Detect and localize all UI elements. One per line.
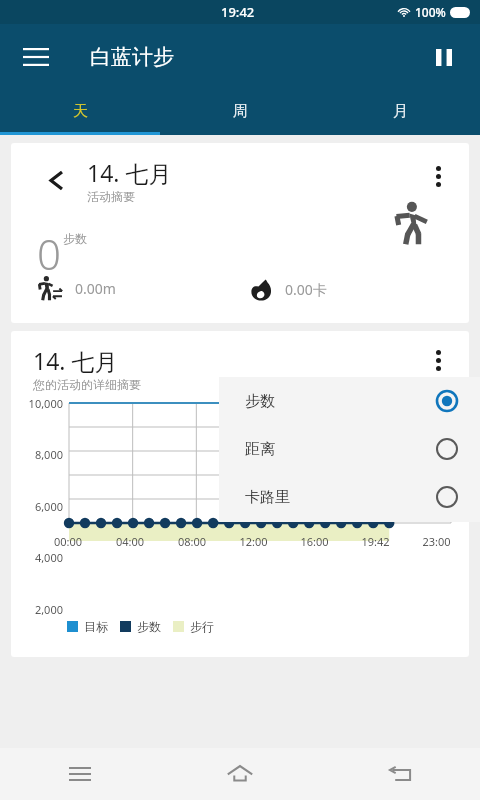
staticText: 100% xyxy=(415,4,446,20)
button[interactable]: 月 xyxy=(320,90,480,132)
staticText: 16:00 xyxy=(284,534,345,549)
staticText: 活动摘要 xyxy=(87,189,135,204)
button[interactable]: Previous day xyxy=(11,143,469,323)
button[interactable]: Menu xyxy=(14,35,58,79)
staticText: 0.00卡 xyxy=(285,280,327,299)
staticText: 周 xyxy=(233,102,248,121)
staticText: 14. 七月 xyxy=(33,345,118,376)
staticText: 19:42 xyxy=(345,534,406,549)
staticText: 卡路里 xyxy=(245,488,290,507)
button[interactable]: More options xyxy=(421,159,455,193)
staticText: 0.00m xyxy=(75,279,116,298)
staticText: 步数 xyxy=(245,392,275,411)
staticText: 08:00 xyxy=(161,534,223,549)
button[interactable]: 步数 xyxy=(219,377,480,425)
button[interactable]: Recent apps xyxy=(0,748,160,800)
button[interactable]: 14. 七月 xyxy=(11,331,469,657)
button[interactable]: 卡路里 xyxy=(219,473,480,521)
button[interactable]: Previous day xyxy=(45,169,67,191)
button[interactable]: Chart options xyxy=(421,343,455,377)
staticText: 10,000 xyxy=(11,396,63,411)
staticText: 14. 七月 xyxy=(87,157,172,188)
button[interactable]: 天 xyxy=(0,90,160,132)
button[interactable]: Back xyxy=(320,748,480,800)
staticText: 6,000 xyxy=(11,499,63,514)
staticText: 0 xyxy=(37,225,61,282)
staticText: 步行 xyxy=(190,619,214,634)
staticText: 您的活动的详细摘要 xyxy=(33,377,141,392)
button[interactable]: 周 xyxy=(160,90,320,132)
button[interactable]: Pause xyxy=(422,35,466,79)
staticText: 距离 xyxy=(245,440,275,459)
staticText: 白蓝计步 xyxy=(90,44,174,70)
staticText: 步数 xyxy=(137,619,161,634)
staticText: 步数 xyxy=(63,231,87,246)
staticText: 天 xyxy=(73,102,88,121)
staticText: 04:00 xyxy=(99,534,161,549)
staticText: 19:42 xyxy=(221,3,255,21)
button[interactable]: 距离 xyxy=(219,425,480,473)
staticText: 4,000 xyxy=(11,550,63,565)
button[interactable]: Home xyxy=(160,748,320,800)
staticText: 月 xyxy=(393,102,408,121)
staticText: 2,000 xyxy=(11,602,63,617)
staticText: 12:00 xyxy=(223,534,284,549)
staticText: 23:00 xyxy=(406,534,467,549)
staticText: 目标 xyxy=(84,619,108,634)
staticText: 8,000 xyxy=(11,447,63,462)
staticText: 00:00 xyxy=(37,534,99,549)
